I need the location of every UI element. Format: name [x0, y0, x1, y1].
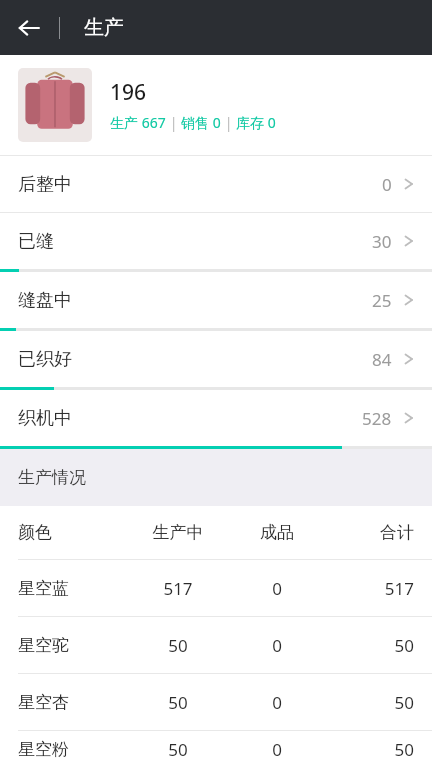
button[interactable]: 196: [0, 55, 432, 155]
staticText: 517: [126, 577, 230, 600]
staticText: 已缝: [18, 230, 54, 253]
staticText: 颜色: [18, 522, 126, 543]
staticText: 星空蓝: [18, 578, 126, 599]
staticText: 库存 0: [236, 113, 276, 132]
button[interactable]: 已织好: [0, 331, 432, 390]
staticText: 已织好: [18, 348, 72, 371]
button[interactable]: 星空蓝: [0, 560, 432, 617]
staticText: 50: [126, 691, 230, 714]
button[interactable]: 星空杏: [0, 674, 432, 731]
staticText: 星空驼: [18, 635, 126, 656]
button[interactable]: 后整中: [0, 156, 432, 212]
staticText: 0: [230, 634, 324, 657]
staticText: 星空杏: [18, 692, 126, 713]
staticText: 星空粉: [18, 739, 126, 760]
staticText: 50: [126, 634, 230, 657]
staticText: 合计: [324, 522, 414, 543]
staticText: 50: [324, 738, 414, 761]
button[interactable]: 星空驼: [0, 617, 432, 674]
button[interactable]: Back: [6, 5, 52, 51]
staticText: 517: [324, 577, 414, 600]
staticText: 销售 0: [181, 113, 221, 132]
staticText: 0: [230, 577, 324, 600]
button[interactable]: 已缝: [0, 213, 432, 272]
staticText: 缝盘中: [18, 289, 72, 312]
button[interactable]: 织机中: [0, 390, 432, 449]
staticText: |: [221, 113, 236, 132]
staticText: 50: [126, 738, 230, 761]
staticText: 生产 667: [110, 113, 166, 132]
staticText: 50: [324, 691, 414, 714]
staticText: 生产: [84, 15, 124, 40]
staticText: 后整中: [18, 173, 72, 196]
staticText: 成品: [230, 522, 324, 543]
staticText: 0: [382, 173, 392, 196]
staticText: 生产中: [126, 522, 230, 543]
staticText: 50: [324, 634, 414, 657]
staticText: 30: [372, 230, 392, 253]
button[interactable]: 缝盘中: [0, 272, 432, 331]
staticText: 196: [110, 78, 147, 107]
staticText: 生产情况: [18, 467, 86, 488]
staticText: 0: [230, 691, 324, 714]
button[interactable]: 星空粉: [0, 731, 432, 768]
staticText: 0: [230, 738, 324, 761]
staticText: 84: [372, 348, 392, 371]
staticText: 528: [362, 407, 392, 430]
staticText: 25: [372, 289, 392, 312]
staticText: |: [166, 113, 181, 132]
staticText: 织机中: [18, 407, 72, 430]
